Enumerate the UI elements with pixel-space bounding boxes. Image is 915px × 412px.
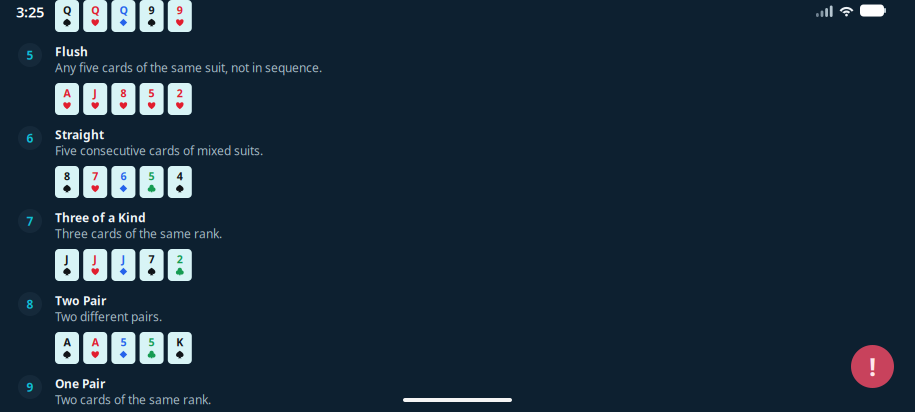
button[interactable]: 6 [0, 126, 915, 209]
staticText: 2 [177, 252, 183, 266]
staticText: J [93, 252, 97, 266]
staticText: Any five cards of the same suit, not in … [55, 59, 322, 75]
staticText: 5 [149, 169, 155, 183]
staticText: 8 [64, 169, 70, 183]
staticText: A [63, 335, 70, 349]
button[interactable]: 7 [0, 209, 915, 292]
staticText: 5 [26, 47, 33, 63]
staticText: J [93, 86, 97, 100]
staticText: 9 [177, 3, 183, 17]
staticText: Two cards of the same rank. [55, 391, 211, 407]
staticText: 6 [120, 169, 126, 183]
staticText: ! [869, 350, 876, 383]
staticText: 9 [26, 379, 33, 395]
staticText: Five consecutive cards of mixed suits. [55, 142, 263, 158]
staticText: 9 [149, 3, 155, 17]
staticText: A [63, 86, 70, 100]
staticText: Flush [55, 43, 88, 59]
staticText: K [176, 335, 183, 349]
staticText: 7 [92, 169, 98, 183]
staticText: 8 [120, 86, 126, 100]
staticText: 7 [149, 252, 155, 266]
staticText: Straight [55, 126, 104, 142]
staticText: 2 [177, 86, 183, 100]
button[interactable]: 9 [0, 375, 915, 412]
button[interactable]: 5 [0, 43, 915, 126]
button[interactable]: Report a problem [851, 345, 894, 388]
staticText: 6 [26, 130, 33, 146]
button[interactable]: 8 [0, 292, 915, 375]
staticText: Q [63, 3, 71, 17]
staticText: 7 [26, 213, 33, 229]
staticText: J [121, 252, 125, 266]
staticText: 5 [149, 86, 155, 100]
staticText: Q [91, 3, 99, 17]
staticText: Two Pair [55, 292, 106, 308]
staticText: A [92, 335, 99, 349]
staticText: One Pair [55, 375, 105, 391]
staticText: Q [119, 3, 127, 17]
staticText: 8 [26, 296, 33, 312]
staticText: 4 [177, 169, 183, 183]
staticText: Two different pairs. [55, 308, 162, 324]
staticText: 5 [120, 335, 126, 349]
staticText: J [65, 252, 69, 266]
staticText: 5 [149, 335, 155, 349]
staticText: Three of a Kind [55, 209, 146, 225]
staticText: Three cards of the same rank. [55, 225, 222, 241]
staticText: 3:25 [16, 2, 44, 21]
